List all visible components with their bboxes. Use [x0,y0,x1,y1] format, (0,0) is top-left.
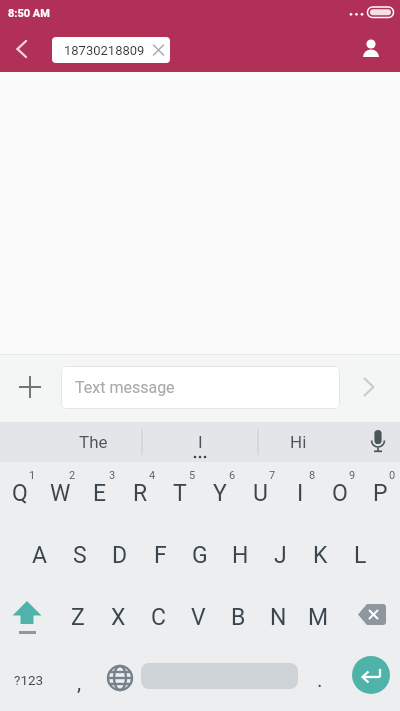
button[interactable]: J [260,524,300,586]
staticText: 4 [149,469,156,482]
button[interactable]: I [143,422,258,462]
button[interactable] [340,354,400,422]
staticText: H [232,542,249,569]
staticText: . [317,668,323,693]
staticText: B [231,604,246,631]
staticText: 3 [109,469,116,482]
staticText: W [50,480,71,507]
button[interactable]: H [220,524,260,586]
button[interactable]: Hi [258,422,338,462]
button[interactable] [100,648,140,711]
staticText: X [111,604,126,631]
button[interactable]: U [240,462,280,524]
staticText: 8 [309,469,316,482]
staticText: O [332,480,348,507]
staticText: V [191,604,206,631]
staticText: M [308,604,329,631]
button[interactable]: O [320,462,360,524]
button[interactable]: F [140,524,180,586]
button[interactable] [340,648,400,711]
staticText: D [112,542,128,569]
button[interactable] [342,586,400,648]
staticText: Z [71,604,85,631]
button[interactable]: Q [0,462,40,524]
staticText: 6 [229,469,236,482]
staticText: ?123 [14,672,44,688]
staticText: 1 [29,469,36,482]
staticText: R [133,480,148,507]
staticText: Text message [75,378,175,397]
staticText: S [73,542,87,569]
staticText: 9 [349,469,356,482]
staticText: T [173,480,187,507]
button[interactable]: 18730218809 [52,37,170,63]
button[interactable]: B [218,586,258,648]
button[interactable]: M [298,586,338,648]
button[interactable]: L [340,524,380,586]
staticText: A [32,542,48,569]
button[interactable]: I [280,462,320,524]
button[interactable]: N [258,586,298,648]
button[interactable] [352,26,400,72]
staticText: The [79,432,108,452]
button[interactable]: T [160,462,200,524]
button[interactable]: The [44,422,142,462]
button[interactable]: P [360,462,400,524]
button[interactable]: C [138,586,178,648]
staticText: I [297,480,304,507]
button[interactable] [0,26,44,72]
staticText: Y [213,480,227,507]
staticText: F [154,542,167,569]
button[interactable]: , [58,648,100,711]
button[interactable] [141,663,298,689]
staticText: , [77,671,82,696]
staticText: 7 [269,469,276,482]
button[interactable]: Y [200,462,240,524]
staticText: 2 [69,469,76,482]
staticText: C [151,604,166,631]
button[interactable]: K [300,524,340,586]
staticText: P [373,480,388,507]
button[interactable]: A [20,524,60,586]
button[interactable]: Z [58,586,98,648]
button[interactable]: W [40,462,80,524]
staticText: U [253,480,268,507]
staticText: L [354,542,367,569]
button[interactable]: X [98,586,138,648]
staticText: E [93,480,107,507]
staticText: Q [12,480,28,507]
button[interactable]: D [100,524,140,586]
staticText: 0 [389,469,396,482]
staticText: G [192,542,208,569]
staticText: I [198,432,203,452]
button[interactable]: Text message [61,366,340,409]
button[interactable] [0,354,60,422]
button[interactable]: S [60,524,100,586]
button[interactable]: E [80,462,120,524]
button[interactable]: R [120,462,160,524]
staticText: J [274,542,287,569]
button[interactable]: . [300,648,340,711]
staticText: K [313,542,328,569]
button[interactable] [340,422,400,462]
button[interactable]: V [178,586,218,648]
button[interactable]: G [180,524,220,586]
staticText: 8:50 AM [8,7,50,20]
staticText: Hi [290,432,307,452]
staticText: 18730218809 [64,43,145,58]
button[interactable] [0,586,58,648]
staticText: N [270,604,287,631]
button[interactable]: ?123 [0,648,58,711]
staticText: 5 [189,469,196,482]
